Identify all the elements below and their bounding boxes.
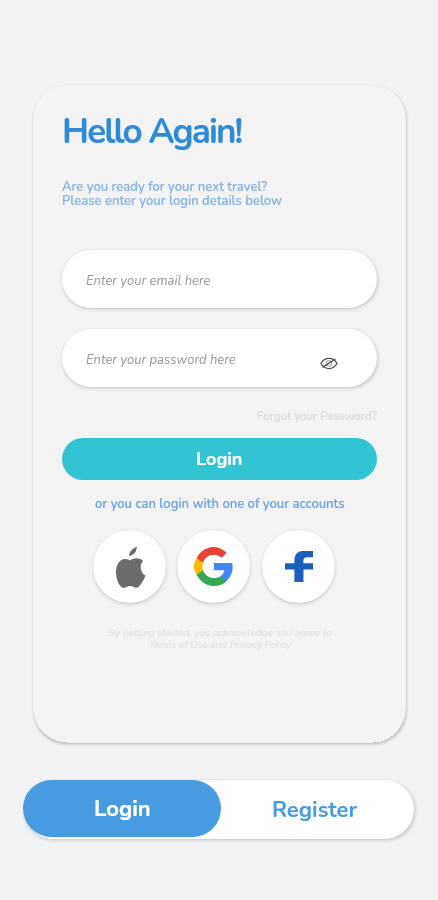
staticText: Login xyxy=(196,447,243,472)
staticText: Enter your password here xyxy=(86,351,236,369)
button[interactable]: Sign in with Facebook xyxy=(262,530,335,603)
button[interactable]: Forgot your Password? xyxy=(62,408,377,424)
staticText: Hello Again! xyxy=(62,108,242,156)
button[interactable]: Enter your email here xyxy=(62,250,377,308)
button[interactable]: Toggle password visibility xyxy=(317,351,341,375)
button[interactable]: Register xyxy=(216,780,414,839)
button[interactable]: Enter your password here xyxy=(62,329,377,387)
staticText: By getting started, you acknowledge and … xyxy=(108,626,332,651)
button[interactable]: Sign in with Google xyxy=(177,530,250,603)
button[interactable]: Sign in with Apple xyxy=(93,530,166,603)
staticText: Are you ready for your next travel? Plea… xyxy=(62,178,283,210)
staticText: Register xyxy=(272,795,358,825)
staticText: Login xyxy=(94,794,151,824)
button[interactable]: Login xyxy=(23,780,221,837)
button[interactable]: Login xyxy=(62,438,377,480)
staticText: Enter your email here xyxy=(86,272,211,290)
staticText: or you can login with one of your accoun… xyxy=(95,495,345,513)
